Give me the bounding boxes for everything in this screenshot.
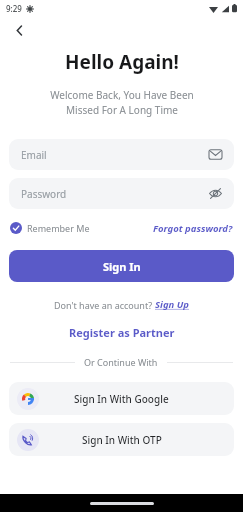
button[interactable]: Sign In — [9, 250, 234, 282]
staticText: Don't have an account? — [54, 299, 155, 311]
staticText: Welcome Back, You Have Been Missed For A… — [50, 88, 194, 117]
button[interactable]: Back — [8, 19, 30, 41]
staticText: Sign In With OTP — [82, 433, 162, 447]
staticText: 9:29 — [6, 3, 22, 14]
button[interactable]: Remember Me — [10, 222, 90, 234]
staticText: Hello Again! — [65, 49, 179, 75]
staticText: Password — [21, 187, 67, 201]
staticText: Email — [21, 148, 47, 162]
staticText: Sign In — [103, 259, 141, 274]
button[interactable]: Password — [9, 178, 234, 209]
staticText: Register as Partner — [69, 325, 175, 340]
button[interactable]: Sign Up — [155, 298, 189, 311]
staticText: Remember Me — [27, 222, 90, 234]
staticText: Sign Up — [155, 298, 189, 311]
button[interactable]: Register as Partner — [69, 325, 175, 340]
staticText: Forgot password? — [153, 222, 233, 235]
staticText: Or Continue With — [84, 356, 158, 368]
staticText: Sign In With Google — [74, 392, 169, 406]
button[interactable]: Sign In With Google — [9, 382, 234, 415]
button[interactable]: Forgot password? — [153, 222, 233, 235]
button[interactable]: Sign In With OTP — [9, 423, 234, 456]
button[interactable]: Email — [9, 139, 234, 170]
